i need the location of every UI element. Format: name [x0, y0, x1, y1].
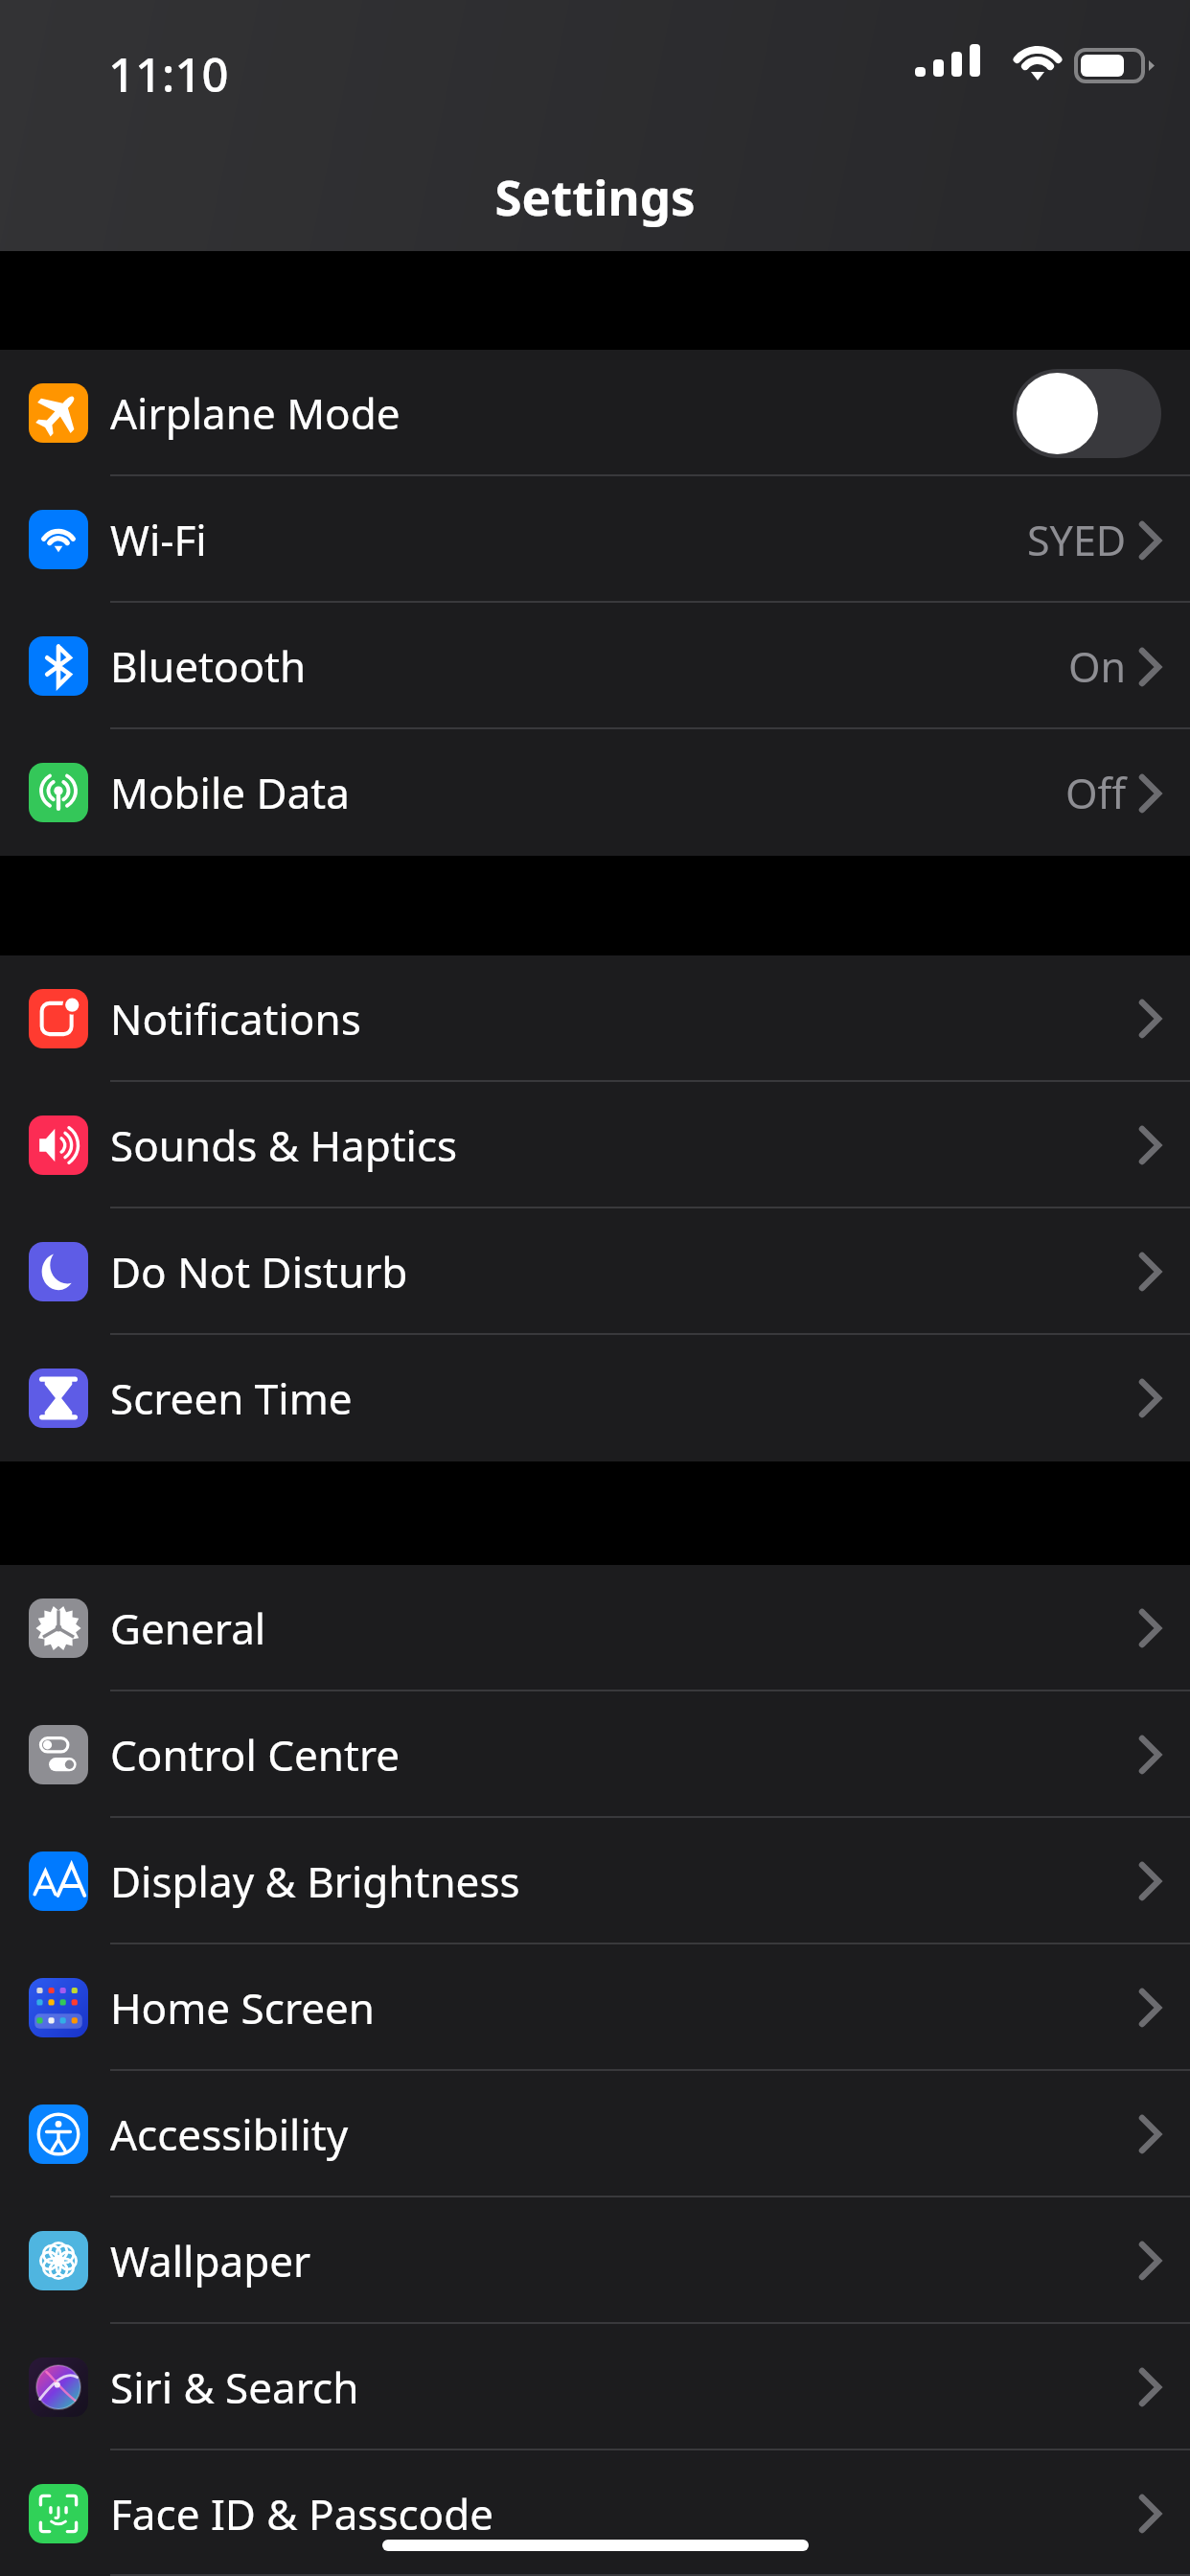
staticText: Screen Time	[110, 1369, 353, 1427]
staticText: Off	[1065, 765, 1127, 821]
staticText: SYED	[1027, 512, 1127, 568]
staticText: Bluetooth	[110, 637, 307, 695]
staticText: Display & Brightness	[110, 1852, 520, 1910]
staticText: Do Not Disturb	[110, 1243, 408, 1300]
staticText: Sounds & Haptics	[110, 1116, 458, 1174]
button[interactable]: Face ID & Passcode	[0, 2450, 1190, 2576]
staticText: Wallpaper	[110, 2232, 311, 2289]
button[interactable]: Home Screen	[0, 1944, 1190, 2071]
staticText: Siri & Search	[110, 2358, 359, 2416]
button[interactable]: Do Not Disturb	[0, 1208, 1190, 1335]
staticText: On	[1068, 638, 1127, 695]
button[interactable]: Mobile Data	[0, 729, 1190, 856]
staticText: General	[110, 1599, 266, 1657]
staticText: Home Screen	[110, 1979, 376, 2036]
button[interactable]: Sounds & Haptics	[0, 1082, 1190, 1208]
staticText: Airplane Mode	[110, 384, 400, 442]
button[interactable]: Airplane Mode toggle	[1013, 369, 1161, 458]
staticText: Wi-Fi	[110, 511, 207, 568]
button[interactable]: Bluetooth	[0, 603, 1190, 729]
staticText: Face ID & Passcode	[110, 2485, 494, 2542]
staticText: Settings	[0, 163, 1190, 229]
staticText: Notifications	[110, 990, 361, 1047]
button[interactable]: Wi-Fi	[0, 476, 1190, 603]
button[interactable]: Airplane Mode	[0, 350, 1190, 476]
staticText: Mobile Data	[110, 764, 350, 821]
button[interactable]: Control Centre	[0, 1691, 1190, 1818]
button[interactable]: Wallpaper	[0, 2197, 1190, 2324]
button[interactable]: Display & Brightness	[0, 1818, 1190, 1944]
staticText: 11:10	[108, 42, 229, 106]
button[interactable]: Siri & Search	[0, 2324, 1190, 2450]
button[interactable]: General	[0, 1565, 1190, 1691]
staticText: Control Centre	[110, 1726, 400, 1783]
staticText: Accessibility	[110, 2105, 349, 2163]
button[interactable]: Notifications	[0, 955, 1190, 1082]
button[interactable]: Accessibility	[0, 2071, 1190, 2197]
button[interactable]: Screen Time	[0, 1335, 1190, 1461]
